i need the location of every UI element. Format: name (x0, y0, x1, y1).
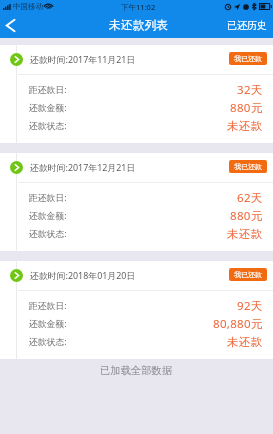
button[interactable]: 已还历史 (0, 13, 273, 38)
staticText: 还款金额: (29, 210, 67, 222)
staticText: 距还款日: (29, 84, 67, 96)
staticText: 62天 (237, 190, 263, 206)
staticText: 未还款 (227, 119, 263, 133)
staticText: 还款金额: (29, 102, 67, 114)
staticText: 我已还款 (234, 270, 262, 279)
button[interactable]: 还款时间:2018年01月20日 (0, 261, 273, 359)
staticText: 未还款 (227, 227, 263, 241)
staticText: 还款时间:2018年01月20日 (30, 269, 136, 281)
staticText: 已还历史 (227, 19, 267, 32)
button[interactable]: Back (0, 13, 24, 38)
staticText: 还款金额: (29, 318, 67, 330)
staticText: 还款时间:2017年12月21日 (30, 161, 136, 173)
button[interactable]: 还款时间:2017年12月21日 (0, 153, 273, 251)
staticText: 还款状态: (29, 120, 67, 132)
staticText: 未还款列表 (109, 18, 168, 33)
staticText: 我已还款 (234, 162, 262, 171)
staticText: 880元 (230, 208, 263, 224)
staticText: 32天 (237, 82, 263, 98)
staticText: 80,880元 (213, 316, 263, 332)
staticText: 距还款日: (29, 300, 67, 312)
staticText: 还款时间:2017年11月21日 (30, 53, 136, 65)
button[interactable]: 还款时间:2017年11月21日 (0, 45, 273, 143)
staticText: 未还款 (227, 335, 263, 349)
staticText: 我已还款 (234, 54, 262, 63)
button[interactable]: 我已还款 (229, 52, 267, 65)
button[interactable]: 我已还款 (229, 268, 267, 281)
staticText: 92天 (237, 298, 263, 314)
staticText: 中国移动 (13, 2, 43, 11)
staticText: 880元 (230, 100, 263, 116)
staticText: 已加载全部数据 (100, 364, 173, 377)
staticText: 还款状态: (29, 228, 67, 240)
staticText: 距还款日: (29, 192, 67, 204)
button[interactable]: 我已还款 (229, 160, 267, 173)
staticText: 下午11:02 (121, 2, 156, 12)
staticText: 还款状态: (29, 336, 67, 348)
